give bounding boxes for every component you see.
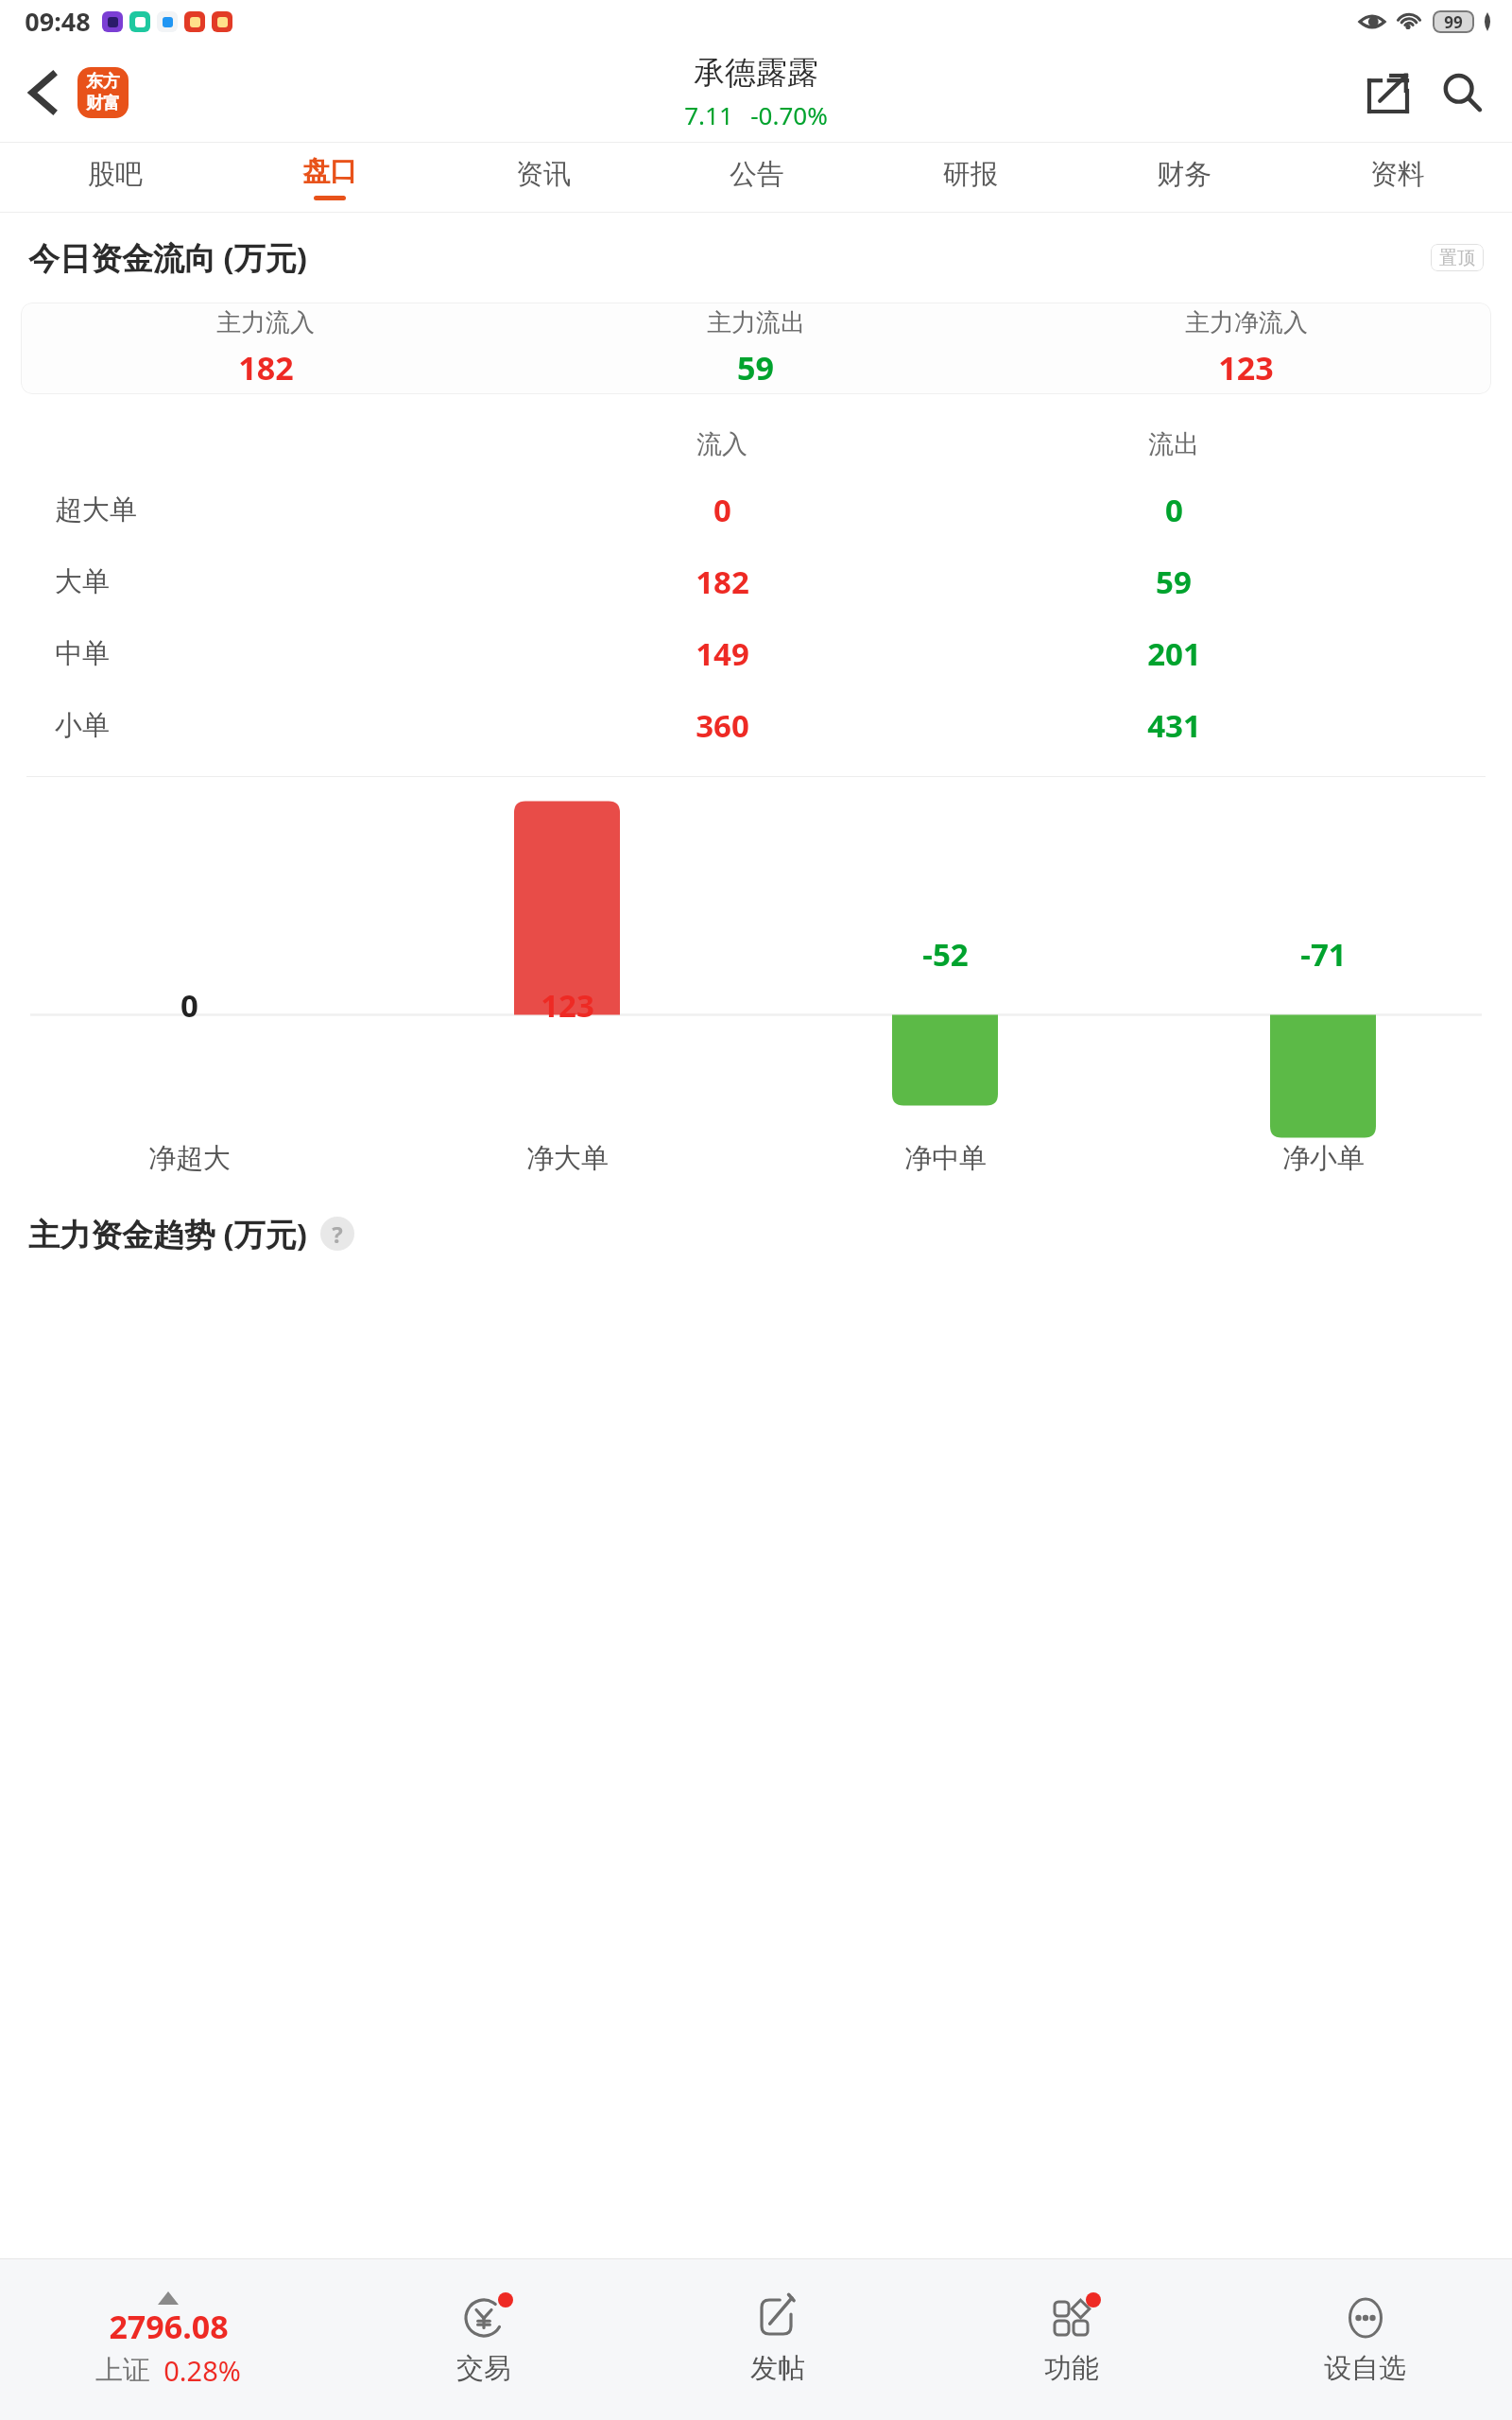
button[interactable]: 发帖 — [630, 2294, 924, 2386]
staticText: 主力净流入 — [1185, 307, 1308, 338]
staticText: 置顶 — [1439, 247, 1475, 269]
button[interactable]: 资讯 — [437, 143, 650, 212]
staticText: 资讯 — [516, 157, 571, 192]
staticText: 财富 — [86, 93, 120, 114]
button[interactable]: 股吧 — [8, 143, 222, 212]
staticText: 上证 — [95, 2353, 150, 2388]
button[interactable]: 盘口 — [222, 143, 437, 212]
button[interactable]: 交易 — [336, 2294, 630, 2386]
staticText: 59 — [737, 346, 774, 389]
button[interactable]: 设自选 — [1218, 2294, 1512, 2386]
button[interactable]: Search — [1433, 63, 1491, 122]
staticText: 财务 — [1157, 157, 1211, 192]
staticText: 小单 — [55, 708, 110, 743]
button[interactable]: 中单 — [0, 617, 1512, 689]
staticText: ? — [332, 1219, 343, 1250]
button[interactable]: 公告 — [650, 143, 864, 212]
staticText: 431 — [1147, 704, 1201, 747]
staticText: 123 — [1218, 346, 1274, 389]
button[interactable]: Help — [320, 1217, 354, 1251]
staticText: -52 — [922, 933, 969, 976]
staticText: 中单 — [55, 636, 110, 671]
button[interactable]: 研报 — [864, 143, 1077, 212]
button[interactable]: 置顶 — [1431, 244, 1484, 271]
button[interactable]: 资料 — [1291, 143, 1504, 212]
staticText: 大单 — [55, 564, 110, 599]
staticText: 0 — [713, 489, 731, 531]
staticText: 净小单 — [1282, 1141, 1365, 1176]
staticText: 承德露露 — [694, 53, 818, 93]
staticText: 09:48 — [25, 4, 91, 39]
staticText: -0.70% — [750, 98, 828, 131]
button[interactable]: Back — [13, 63, 72, 122]
button[interactable]: 超大单 — [0, 474, 1512, 545]
staticText: 0 — [180, 984, 198, 1027]
button[interactable]: 主力流入 — [21, 302, 1491, 394]
button[interactable]: 小单 — [0, 689, 1512, 761]
staticText: 超大单 — [55, 493, 137, 527]
staticText: 7.11 — [684, 98, 733, 131]
staticText: 0.28% — [163, 2352, 241, 2389]
staticText: 149 — [696, 632, 749, 675]
button[interactable]: 大单 — [0, 545, 1512, 617]
staticText: -71 — [1300, 933, 1347, 976]
staticText: 201 — [1147, 632, 1201, 675]
staticText: 资料 — [1370, 157, 1425, 192]
button[interactable]: Share — [1359, 63, 1417, 122]
staticText: 交易 — [456, 2351, 511, 2386]
staticText: 182 — [238, 346, 294, 389]
staticText: 360 — [696, 704, 749, 747]
staticText: 股吧 — [88, 157, 143, 192]
staticText: 发帖 — [750, 2351, 805, 2386]
button[interactable]: 功能 — [924, 2294, 1218, 2386]
staticText: 182 — [696, 561, 749, 603]
staticText: 东方 — [86, 71, 120, 93]
staticText: 99 — [1444, 11, 1463, 33]
staticText: 净大单 — [526, 1141, 609, 1176]
staticText: 公告 — [730, 157, 784, 192]
staticText: 0 — [1165, 489, 1183, 531]
staticText: 2796.08 — [109, 2305, 229, 2348]
button[interactable]: 2796.08 — [0, 2291, 336, 2389]
staticText: 主力流出 — [707, 307, 805, 338]
staticText: 盘口 — [302, 154, 357, 189]
staticText: 主力流入 — [216, 307, 315, 338]
staticText: 今日资金流向 (万元) — [28, 236, 307, 279]
staticText: 59 — [1156, 561, 1192, 603]
button[interactable]: 财务 — [1077, 143, 1291, 212]
staticText: 流出 — [1148, 428, 1199, 460]
button[interactable]: East Money — [77, 67, 129, 118]
staticText: 净中单 — [904, 1141, 987, 1176]
staticText: 研报 — [943, 157, 998, 192]
staticText: 123 — [541, 984, 594, 1027]
staticText: 净超大 — [148, 1141, 231, 1176]
staticText: 功能 — [1044, 2351, 1099, 2386]
staticText: 设自选 — [1324, 2351, 1406, 2386]
staticText: 主力资金趋势 (万元) — [28, 1213, 307, 1255]
staticText: 流入 — [696, 428, 747, 460]
